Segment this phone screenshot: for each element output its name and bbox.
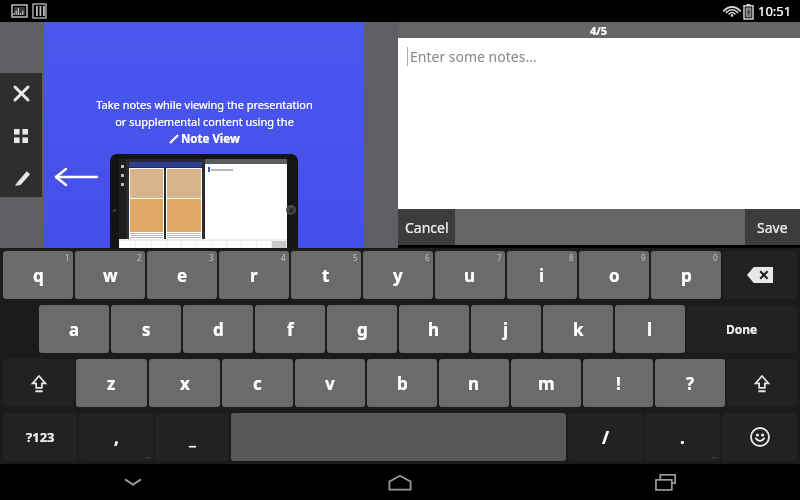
staticText: m	[538, 372, 555, 395]
button[interactable]: i	[507, 251, 577, 299]
staticText: /	[602, 426, 610, 449]
button[interactable]: Recent apps	[533, 464, 800, 500]
staticText: w	[103, 264, 118, 287]
staticText: d	[213, 318, 224, 341]
staticText: 3	[209, 252, 214, 263]
staticText: 7	[497, 252, 502, 263]
staticText: ...	[145, 452, 150, 460]
staticText: b	[397, 372, 408, 395]
staticText: ?	[686, 372, 695, 395]
staticText: ?123	[26, 428, 55, 446]
button[interactable]: Emoji	[722, 413, 797, 461]
button[interactable]: b	[367, 359, 437, 407]
button[interactable]: q	[3, 251, 73, 299]
button[interactable]: h	[399, 305, 469, 353]
button[interactable]: t	[291, 251, 361, 299]
staticText: 0	[713, 252, 718, 263]
staticText: 9	[641, 252, 646, 263]
staticText: Done	[726, 321, 758, 337]
button[interactable]: Note View	[0, 156, 42, 197]
button[interactable]: r	[219, 251, 289, 299]
button[interactable]: _	[155, 413, 229, 461]
staticText: v	[325, 372, 335, 395]
button[interactable]: s	[111, 305, 181, 353]
staticText: u	[464, 264, 476, 287]
staticText: Enter some notes…	[410, 47, 537, 66]
staticText: ,	[114, 426, 119, 449]
button[interactable]: z	[76, 359, 147, 407]
button[interactable]: ?	[655, 359, 725, 407]
button[interactable]: Enter some notes…	[398, 38, 800, 209]
staticText: _	[189, 426, 196, 449]
staticText: 8	[569, 252, 574, 263]
staticText: t	[322, 264, 330, 287]
staticText: or supplemental content using the	[115, 114, 294, 129]
staticText: x	[180, 372, 190, 395]
button[interactable]: !	[583, 359, 653, 407]
button[interactable]: m	[511, 359, 581, 407]
button[interactable]: Backspace	[723, 251, 797, 299]
button[interactable]: p	[651, 251, 721, 299]
button[interactable]: k	[543, 305, 613, 353]
staticText: Cancel	[405, 218, 449, 237]
button[interactable]: d	[183, 305, 253, 353]
staticText: ...	[712, 452, 717, 460]
button[interactable]: Save	[745, 209, 800, 245]
staticText: z	[107, 372, 116, 395]
button[interactable]: Home	[266, 464, 533, 500]
staticText: 4/5	[590, 23, 608, 38]
button[interactable]: f	[255, 305, 325, 353]
button[interactable]: n	[439, 359, 509, 407]
staticText: 2	[137, 252, 142, 263]
staticText: f	[287, 318, 294, 341]
staticText: c	[253, 372, 262, 395]
button[interactable]: v	[295, 359, 365, 407]
staticText: Note View	[181, 131, 240, 147]
button[interactable]: Grid view	[0, 115, 42, 156]
staticText: q	[33, 264, 44, 287]
button[interactable]: Shift	[3, 359, 74, 407]
button[interactable]: e	[147, 251, 217, 299]
button[interactable]: l	[615, 305, 685, 353]
staticText: j	[503, 318, 509, 341]
button[interactable]: y	[363, 251, 433, 299]
staticText: r	[250, 264, 258, 287]
staticText: Take notes while viewing the presentatio…	[96, 97, 313, 112]
button[interactable]: w	[75, 251, 145, 299]
staticText: !	[616, 372, 621, 395]
button[interactable]: Close	[0, 73, 42, 114]
staticText: 4	[281, 252, 286, 263]
staticText: 10:51	[758, 2, 792, 20]
staticText: Save	[757, 218, 788, 237]
button[interactable]: c	[222, 359, 293, 407]
button[interactable]: a	[39, 305, 109, 353]
staticText: o	[609, 264, 620, 287]
staticText: p	[681, 264, 692, 287]
button[interactable]: ?123	[3, 413, 77, 461]
button[interactable]: u	[435, 251, 505, 299]
staticText: .	[680, 426, 685, 449]
button[interactable]: g	[327, 305, 397, 353]
staticText: g	[357, 318, 368, 341]
button[interactable]: o	[579, 251, 649, 299]
button[interactable]: Cancel	[398, 209, 455, 245]
staticText: k	[573, 318, 584, 341]
staticText: 6	[425, 252, 430, 263]
button[interactable]: /	[568, 413, 643, 461]
staticText: 1	[65, 252, 70, 263]
button[interactable]: Done	[687, 305, 797, 353]
button[interactable]: Shift	[727, 359, 797, 407]
button[interactable]: j	[471, 305, 541, 353]
staticText: n	[468, 372, 480, 395]
staticText: s	[142, 318, 151, 341]
staticText: i	[539, 264, 545, 287]
button[interactable]: ,	[79, 413, 153, 461]
button[interactable]: x	[149, 359, 220, 407]
staticText: e	[177, 264, 188, 287]
staticText: y	[393, 264, 403, 287]
button[interactable]: .	[645, 413, 720, 461]
staticText: l	[647, 318, 653, 341]
staticText: 5	[353, 252, 358, 263]
button[interactable]: Hide keyboard	[0, 464, 266, 500]
